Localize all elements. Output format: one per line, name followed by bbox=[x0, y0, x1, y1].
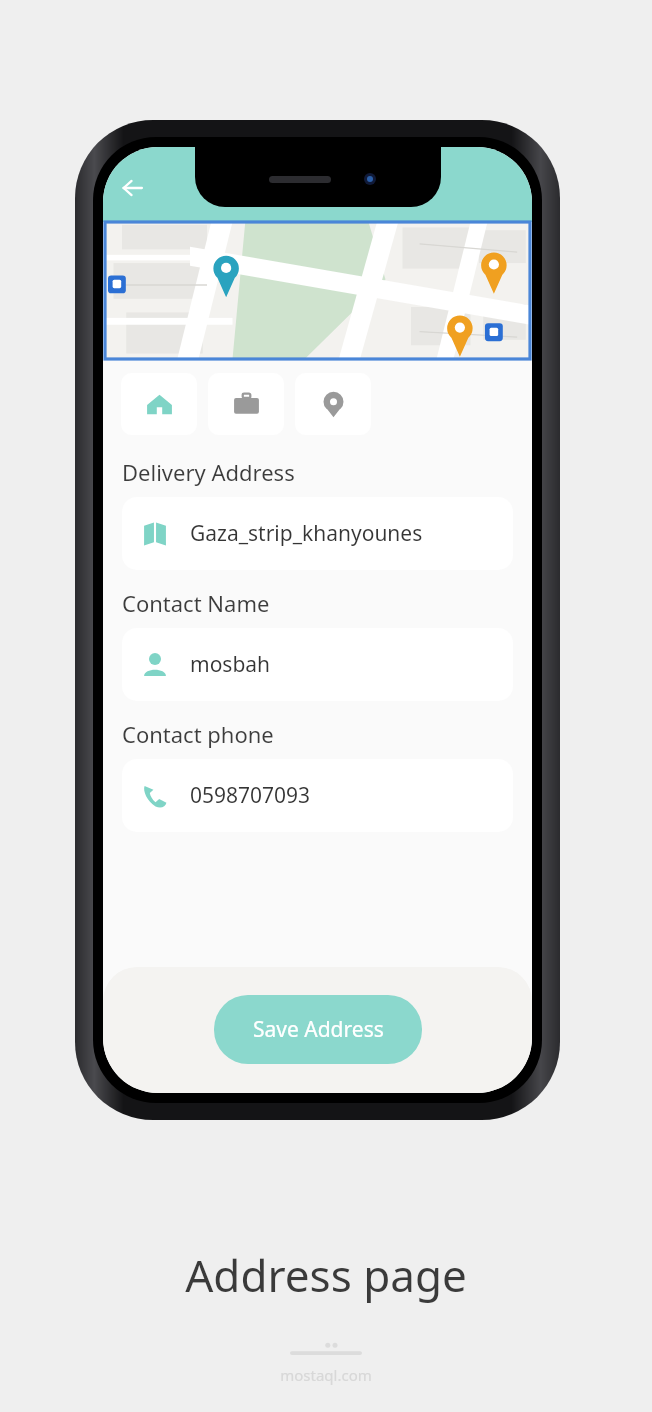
button[interactable]: Work bbox=[208, 373, 284, 435]
button[interactable]: Other location bbox=[295, 373, 371, 435]
staticText: Contact Name bbox=[122, 588, 270, 618]
button[interactable]: Home bbox=[121, 373, 197, 435]
button[interactable]: Gaza_strip_khanyounes bbox=[122, 497, 513, 570]
staticText: mostaql.com bbox=[0, 1365, 652, 1385]
staticText: Contact phone bbox=[122, 719, 274, 749]
button[interactable]: Back bbox=[109, 165, 155, 211]
button[interactable]: mosbah bbox=[122, 628, 513, 701]
staticText: Gaza_strip_khanyounes bbox=[190, 519, 423, 548]
button[interactable]: 0598707093 bbox=[122, 759, 513, 832]
staticText: Save Address bbox=[253, 1015, 384, 1044]
staticText: 0598707093 bbox=[190, 781, 311, 810]
staticText: Delivery Address bbox=[122, 457, 295, 487]
button[interactable]: Save Address bbox=[214, 995, 422, 1064]
staticText: mosbah bbox=[190, 650, 271, 679]
staticText: Address page bbox=[0, 1245, 652, 1305]
